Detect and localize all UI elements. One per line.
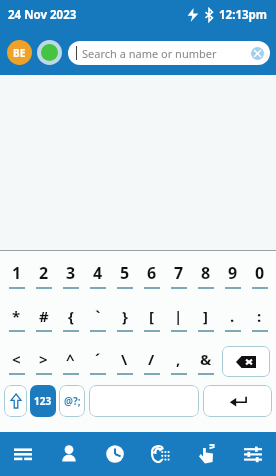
staticText: 4 [93,262,103,284]
staticText: 6 [147,262,157,284]
button[interactable]: 0 [246,254,273,297]
staticText: Search a name or number [82,46,217,61]
staticText: . [230,306,235,326]
staticText: @?; [64,394,81,408]
staticText: BE [13,46,26,60]
button[interactable]: 7 [165,254,192,297]
button[interactable]: { [57,297,84,340]
button[interactable]: # [30,297,57,340]
staticText: < [12,349,21,369]
button[interactable]: 2 [30,254,57,297]
staticText: 8 [201,262,211,284]
button[interactable]: ´ [84,340,111,383]
button[interactable]: BE [7,40,32,65]
button[interactable]: > [30,340,57,383]
button[interactable]: 8 [192,254,219,297]
button[interactable]: 3 [57,254,84,297]
button[interactable]: @?; [59,385,85,417]
staticText: * [12,306,21,326]
staticText: 123 [34,394,52,408]
button[interactable]: 6 [138,254,165,297]
staticText: 9 [228,262,238,284]
button[interactable]: Search a name or number [68,41,270,65]
button[interactable]: Backspace [222,346,270,377]
staticText: 0 [255,262,265,284]
staticText: | [174,306,183,326]
button[interactable]: 1 [3,254,30,297]
button[interactable]: / [138,340,165,383]
button[interactable]: 123 [30,385,56,417]
button[interactable]: & [192,340,219,383]
button[interactable]: . [219,297,246,340]
staticText: { [68,306,74,326]
button[interactable]: Contacts [46,432,92,476]
button[interactable]: Keypad [138,432,184,476]
staticText: ^ [66,349,75,369]
button[interactable]: Settings [230,432,276,476]
button[interactable]: : [246,297,273,340]
button[interactable]: Status [37,40,62,65]
button[interactable]: ^ [57,340,84,383]
staticText: 24 Nov 2023 [8,7,77,23]
staticText: } [122,306,128,326]
staticText: \ [121,349,128,369]
button[interactable]: } [111,297,138,340]
staticText: & [200,349,212,369]
staticText: ] [203,306,208,326]
button[interactable]: ` [84,297,111,340]
button[interactable]: 4 [84,254,111,297]
staticText: ` [95,306,101,326]
staticText: : [257,306,262,326]
button[interactable]: Clear [251,47,264,60]
button[interactable]: Space [89,385,199,417]
staticText: 3 [66,262,76,284]
button[interactable]: | [165,297,192,340]
staticText: , [176,349,181,369]
button[interactable]: 9 [219,254,246,297]
button[interactable]: \ [111,340,138,383]
button[interactable]: * [3,297,30,340]
staticText: 1 [12,262,22,284]
staticText: ´ [95,349,101,369]
staticText: > [39,349,48,369]
staticText: 12:13pm [219,7,268,23]
button[interactable]: Recent [92,432,138,476]
staticText: 7 [174,262,184,284]
button[interactable]: 5 [111,254,138,297]
button[interactable]: Touch [184,432,230,476]
staticText: [ [149,306,154,326]
staticText: 2 [39,262,49,284]
button[interactable]: Enter [203,385,272,417]
staticText: / [148,349,155,369]
staticText: 5 [120,262,130,284]
button[interactable]: < [3,340,30,383]
button[interactable]: Shift [4,385,27,417]
button[interactable]: [ [138,297,165,340]
staticText: # [39,306,49,326]
button[interactable]: , [165,340,192,383]
button[interactable]: ] [192,297,219,340]
button[interactable]: Menu [0,432,46,476]
